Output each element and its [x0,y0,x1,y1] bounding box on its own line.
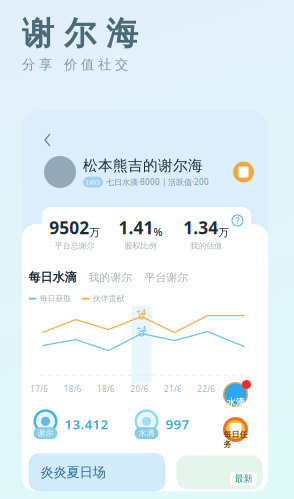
staticText: 分 享 价 值 社 交 [22,56,128,73]
staticText: 炎炎夏日场 [40,464,105,481]
button[interactable]: 我的谢尔 [88,271,132,284]
staticText: 平台总谢尔 [55,241,95,251]
staticText: 松本熊吉的谢尔海 [83,157,203,175]
staticText: % [153,225,162,239]
staticText: 1.41 [118,216,153,239]
staticText: 每日水滴 [28,270,76,285]
staticText: 18/6 [64,384,82,394]
button[interactable]: Daily tasks [223,417,248,442]
button[interactable]: Daily reward [233,161,254,182]
button[interactable]: 水滴 [129,408,199,440]
button[interactable]: 每日水滴 [28,270,76,285]
staticText: 997 [165,415,189,433]
staticText: 谢尔 [37,428,53,438]
staticText: ? [235,214,239,227]
staticText: 水滴 [226,397,244,408]
staticText: 1.34 [183,216,218,239]
staticText: +4 [136,307,146,317]
staticText: 我的估值 [190,241,222,251]
staticText: 9502 [49,216,89,239]
staticText: 我的谢尔 [88,271,132,284]
button[interactable]: 平台谢尔 [144,271,188,284]
staticText: 22/6 [197,384,215,394]
staticText: 谢 尔 海 [22,14,138,53]
staticText: 最新 [234,473,252,484]
staticText: 平台谢尔 [144,271,188,284]
staticText: 七日水滴·8000 | 活跃值·200 [106,177,209,187]
button[interactable]: Back [38,130,58,150]
staticText: 万 [89,226,100,239]
staticText: 20/6 [130,384,148,394]
staticText: 每日获取 [39,294,71,303]
staticText: 每日任务 [223,430,247,449]
button[interactable]: 最新 [176,455,262,489]
button[interactable]: Help [232,215,243,226]
button[interactable]: 炎炎夏日场 [28,453,165,492]
staticText: 21/6 [164,384,182,394]
staticText: 23/6 [231,384,249,394]
staticText: 伙伴贡献 [92,294,124,303]
staticText: 股权比例 [124,241,156,251]
button[interactable]: 谢尔 [28,408,118,440]
button[interactable]: Water drop [223,382,248,407]
staticText: 18/6 [97,384,115,394]
staticText: 水滴 [138,428,154,438]
staticText: 17/6 [30,384,48,394]
staticText: Lv05 [86,178,100,186]
staticText: 万 [218,226,229,239]
staticText: +4 [136,324,146,334]
staticText: 13.412 [64,415,108,433]
